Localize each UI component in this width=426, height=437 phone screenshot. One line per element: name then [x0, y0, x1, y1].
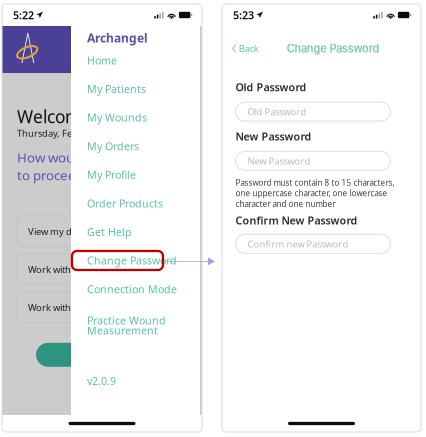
staticText: Change Password: [287, 42, 379, 55]
staticText: Confirm New Password: [235, 213, 357, 227]
staticText: Confirm new Password: [247, 238, 348, 250]
button[interactable]: Old Password: [235, 102, 390, 121]
button[interactable]: View my dashboard: [17, 216, 183, 247]
staticText: Work with a new patient: [28, 301, 130, 313]
staticText: 5:22: [13, 8, 34, 22]
staticText: to proceed?: [17, 166, 90, 184]
button[interactable]: Connection Mode: [71, 275, 200, 303]
button[interactable]: Change Password: [71, 246, 200, 275]
staticText: My Patients: [87, 82, 146, 96]
staticText: Home: [87, 53, 117, 67]
button[interactable]: My Wounds: [71, 103, 200, 132]
staticText: My Orders: [87, 139, 139, 153]
button[interactable]: Order Products: [71, 189, 200, 217]
button[interactable]: Work with a new patient: [17, 292, 183, 323]
staticText: Get Help: [87, 225, 132, 239]
button[interactable]: New Password: [235, 151, 390, 170]
staticText: Thursday, February 23, 2023: [17, 127, 139, 139]
staticText: Work with an existing patient: [28, 263, 151, 275]
staticText: Welcome,: [17, 105, 96, 128]
staticText: Password must contain 8 to 15 characters…: [235, 177, 394, 209]
button[interactable]: My Profile: [71, 160, 200, 189]
staticText: Connection Mode: [87, 282, 177, 296]
staticText: Measurement: [87, 323, 158, 337]
staticText: Archangel: [87, 30, 148, 46]
button[interactable]: Confirm new Password: [235, 234, 390, 253]
button[interactable]: Practice Wound: [71, 303, 166, 342]
staticText: My Profile: [87, 168, 136, 182]
button[interactable]: Get Help: [71, 217, 200, 246]
staticText: View my dashboard: [28, 225, 114, 237]
staticText: My Wounds: [87, 110, 147, 125]
staticText: Back: [239, 42, 259, 55]
staticText: 5:23: [233, 8, 254, 22]
button[interactable]: My Orders: [71, 132, 200, 160]
staticText: Change Password: [87, 253, 177, 268]
staticText: v2.0.9: [87, 374, 116, 388]
staticText: Order Products: [87, 196, 163, 210]
button[interactable]: Log Out: [36, 343, 164, 367]
staticText: How would you like: [17, 148, 135, 166]
button[interactable]: Home: [71, 46, 200, 74]
button[interactable]: My Patients: [71, 74, 200, 103]
button[interactable]: Work with an existing patient: [17, 254, 183, 285]
staticText: New Password: [235, 129, 311, 143]
button[interactable]: Back: [222, 36, 263, 60]
staticText: Old Password: [247, 105, 306, 118]
staticText: Old Password: [235, 80, 306, 94]
staticText: Practice Wound: [87, 313, 166, 327]
staticText: New Password: [247, 155, 310, 167]
